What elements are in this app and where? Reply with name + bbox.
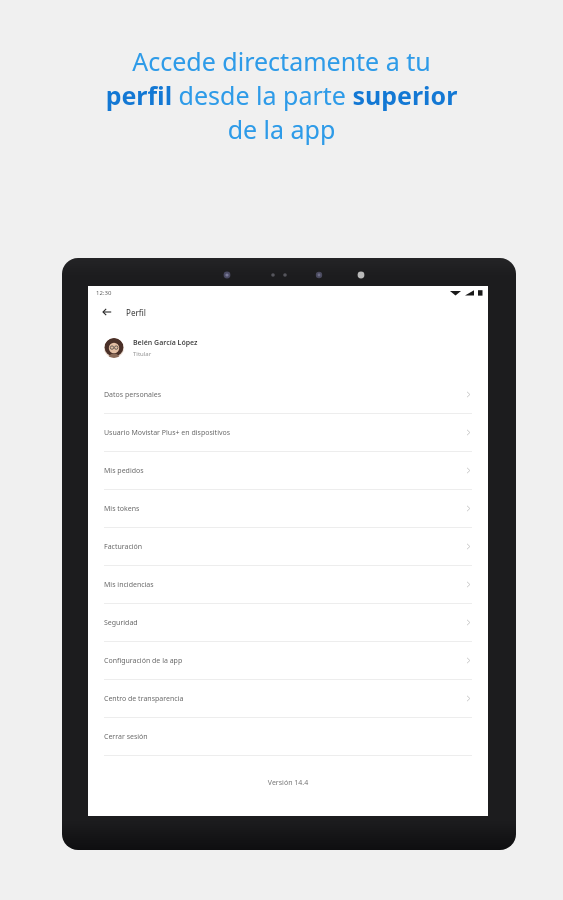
staticText: Versión 14.4 (88, 778, 488, 788)
button[interactable]: Datos personales (88, 376, 488, 413)
staticText: Accede directamente a tu perfil desde la… (24, 44, 539, 146)
button[interactable]: Mis incidencias (88, 566, 488, 603)
staticText: Configuración de la app (104, 656, 465, 666)
button[interactable]: Mis pedidos (88, 452, 488, 489)
staticText: Titular (133, 350, 152, 358)
staticText: Usuario Movistar Plus+ en dispositivos (104, 428, 465, 438)
staticText: Centro de transparencia (104, 694, 465, 704)
staticText: Mis tokens (104, 504, 465, 514)
staticText: Seguridad (104, 618, 465, 628)
button[interactable]: Seguridad (88, 604, 488, 641)
staticText: Datos personales (104, 390, 465, 400)
button[interactable]: Belén García López (104, 338, 472, 358)
staticText: Mis pedidos (104, 466, 465, 476)
staticText: 12:30 (96, 289, 112, 297)
button[interactable]: Cerrar sesión (88, 718, 488, 755)
staticText: Belén García López (133, 338, 198, 348)
button[interactable]: Usuario Movistar Plus+ en dispositivos (88, 414, 488, 451)
staticText: Cerrar sesión (104, 732, 472, 742)
button[interactable]: Facturación (88, 528, 488, 565)
button[interactable]: Configuración de la app (88, 642, 488, 679)
button[interactable]: Mis tokens (88, 490, 488, 527)
button[interactable]: Atrás (98, 303, 116, 321)
button[interactable]: Centro de transparencia (88, 680, 488, 717)
staticText: Facturación (104, 542, 465, 552)
staticText: Perfil (126, 307, 147, 318)
staticText: Mis incidencias (104, 580, 465, 590)
